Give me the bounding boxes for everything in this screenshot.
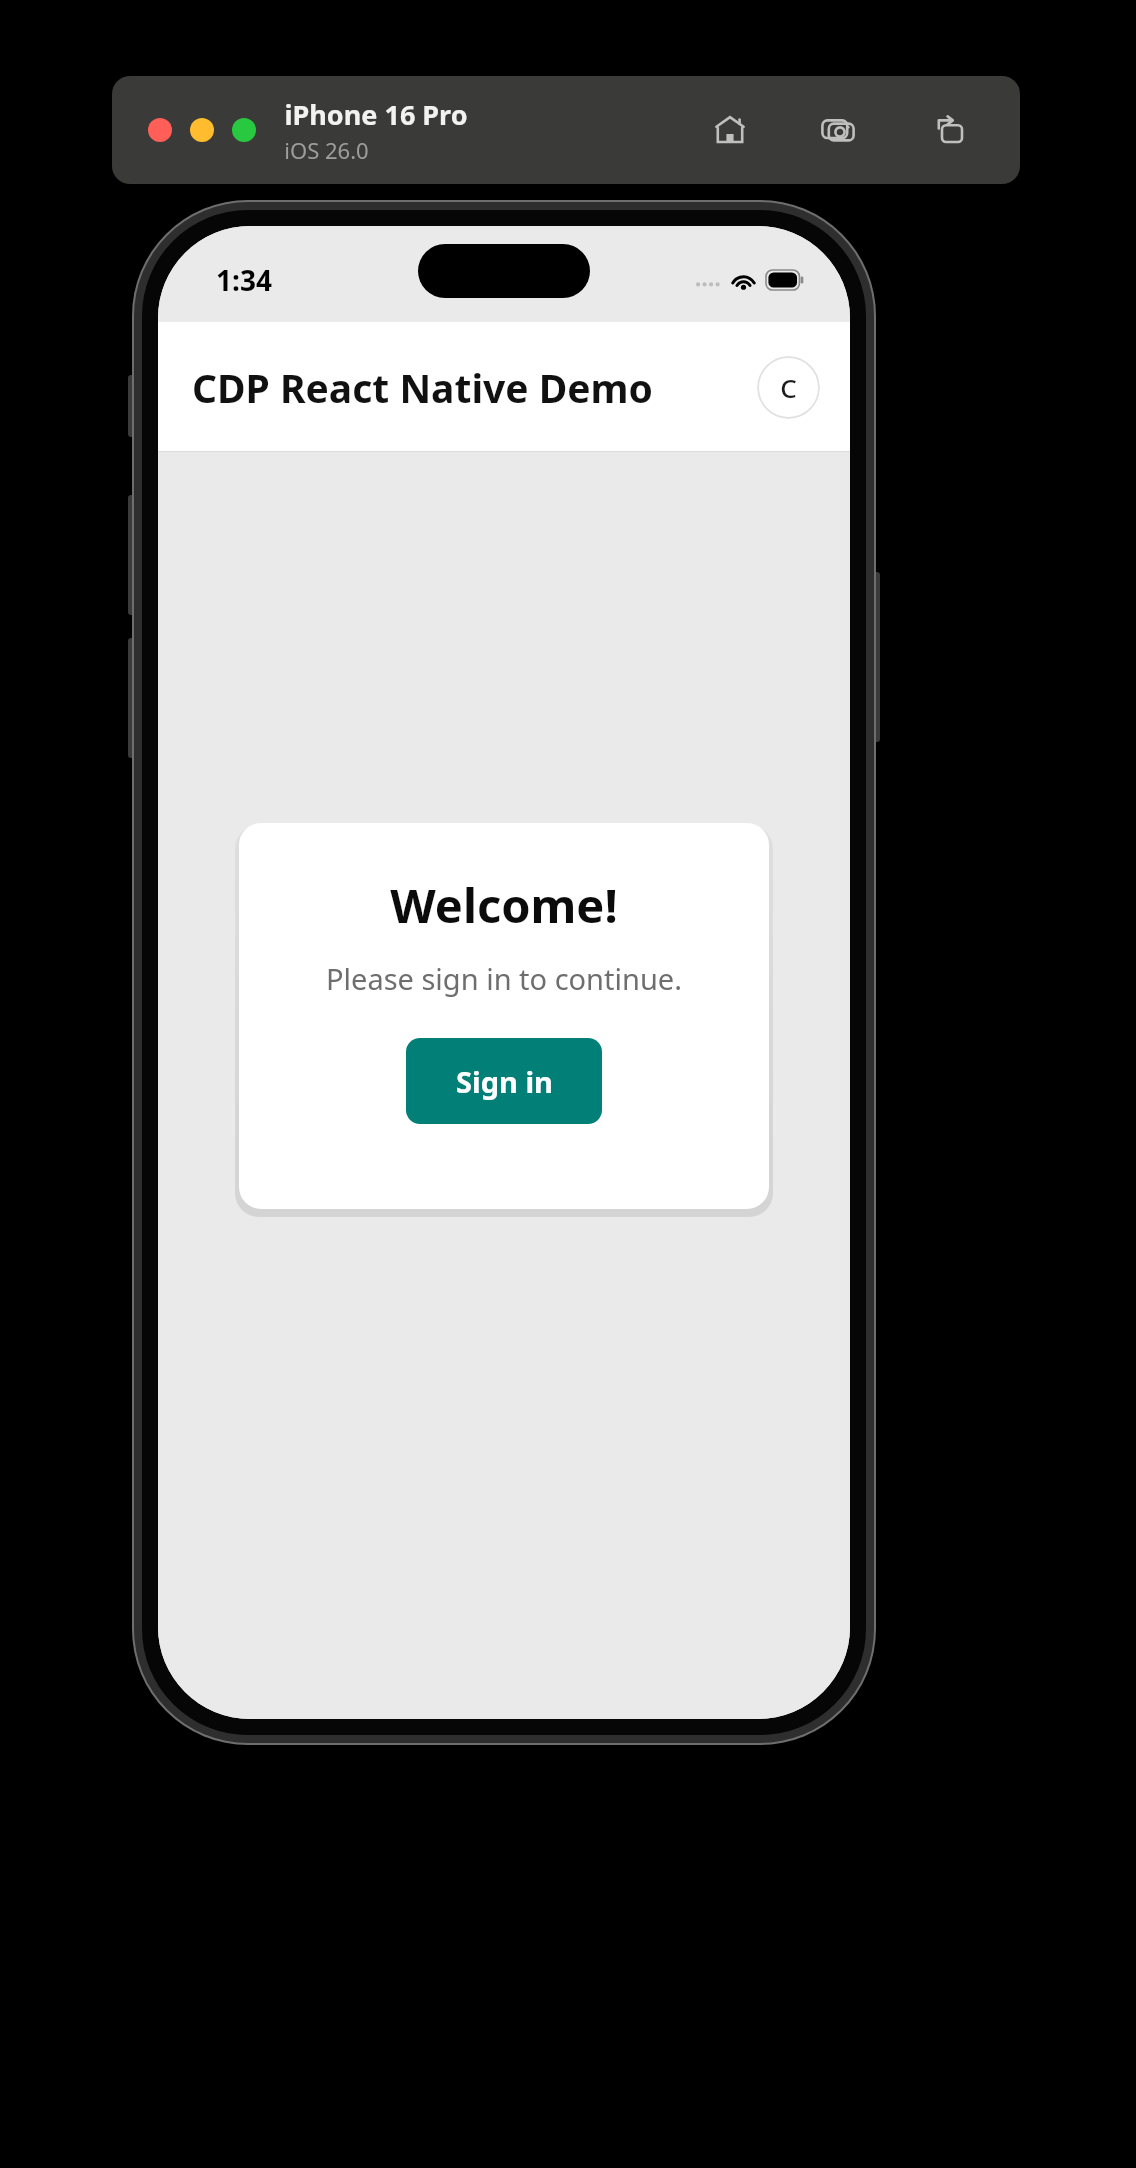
button[interactable]: Screenshot	[814, 104, 866, 156]
staticText: C	[780, 370, 797, 405]
staticText: 1:34	[216, 261, 272, 299]
button[interactable]: Close	[148, 118, 172, 142]
button[interactable]: Sign in	[406, 1038, 602, 1124]
staticText: Please sign in to continue.	[326, 959, 682, 998]
staticText: iPhone 16 Pro	[284, 96, 468, 133]
staticText: Welcome!	[390, 873, 618, 937]
staticText: CDP React Native Demo	[192, 361, 653, 414]
staticText: Sign in	[456, 1062, 553, 1101]
button[interactable]: Zoom	[232, 118, 256, 142]
button[interactable]: Home	[704, 104, 756, 156]
button[interactable]: Record	[924, 104, 976, 156]
button[interactable]: Minimize	[190, 118, 214, 142]
staticText: iOS 26.0	[284, 135, 369, 165]
button[interactable]: Account	[757, 356, 820, 419]
